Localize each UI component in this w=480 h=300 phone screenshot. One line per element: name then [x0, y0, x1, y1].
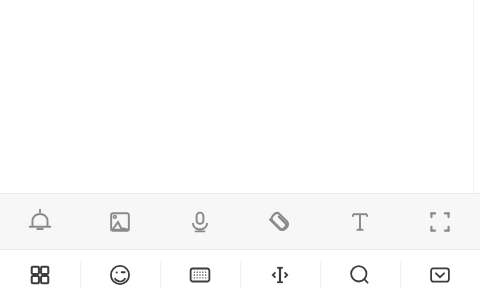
button[interactable]: Keyboard [160, 250, 240, 300]
button[interactable]: Text formatting [320, 193, 400, 250]
button[interactable]: Search [320, 250, 400, 300]
button[interactable]: Attach file [240, 193, 320, 250]
button[interactable]: Insert image [80, 193, 160, 250]
button[interactable]: Voice recording [160, 193, 240, 250]
button[interactable]: Emoji [80, 250, 160, 300]
button[interactable]: Notification [0, 193, 80, 250]
button[interactable]: Apps [0, 250, 80, 300]
button[interactable]: Full screen [400, 193, 480, 250]
button[interactable]: Collapse [400, 250, 480, 300]
button[interactable]: Cursor control [240, 250, 320, 300]
